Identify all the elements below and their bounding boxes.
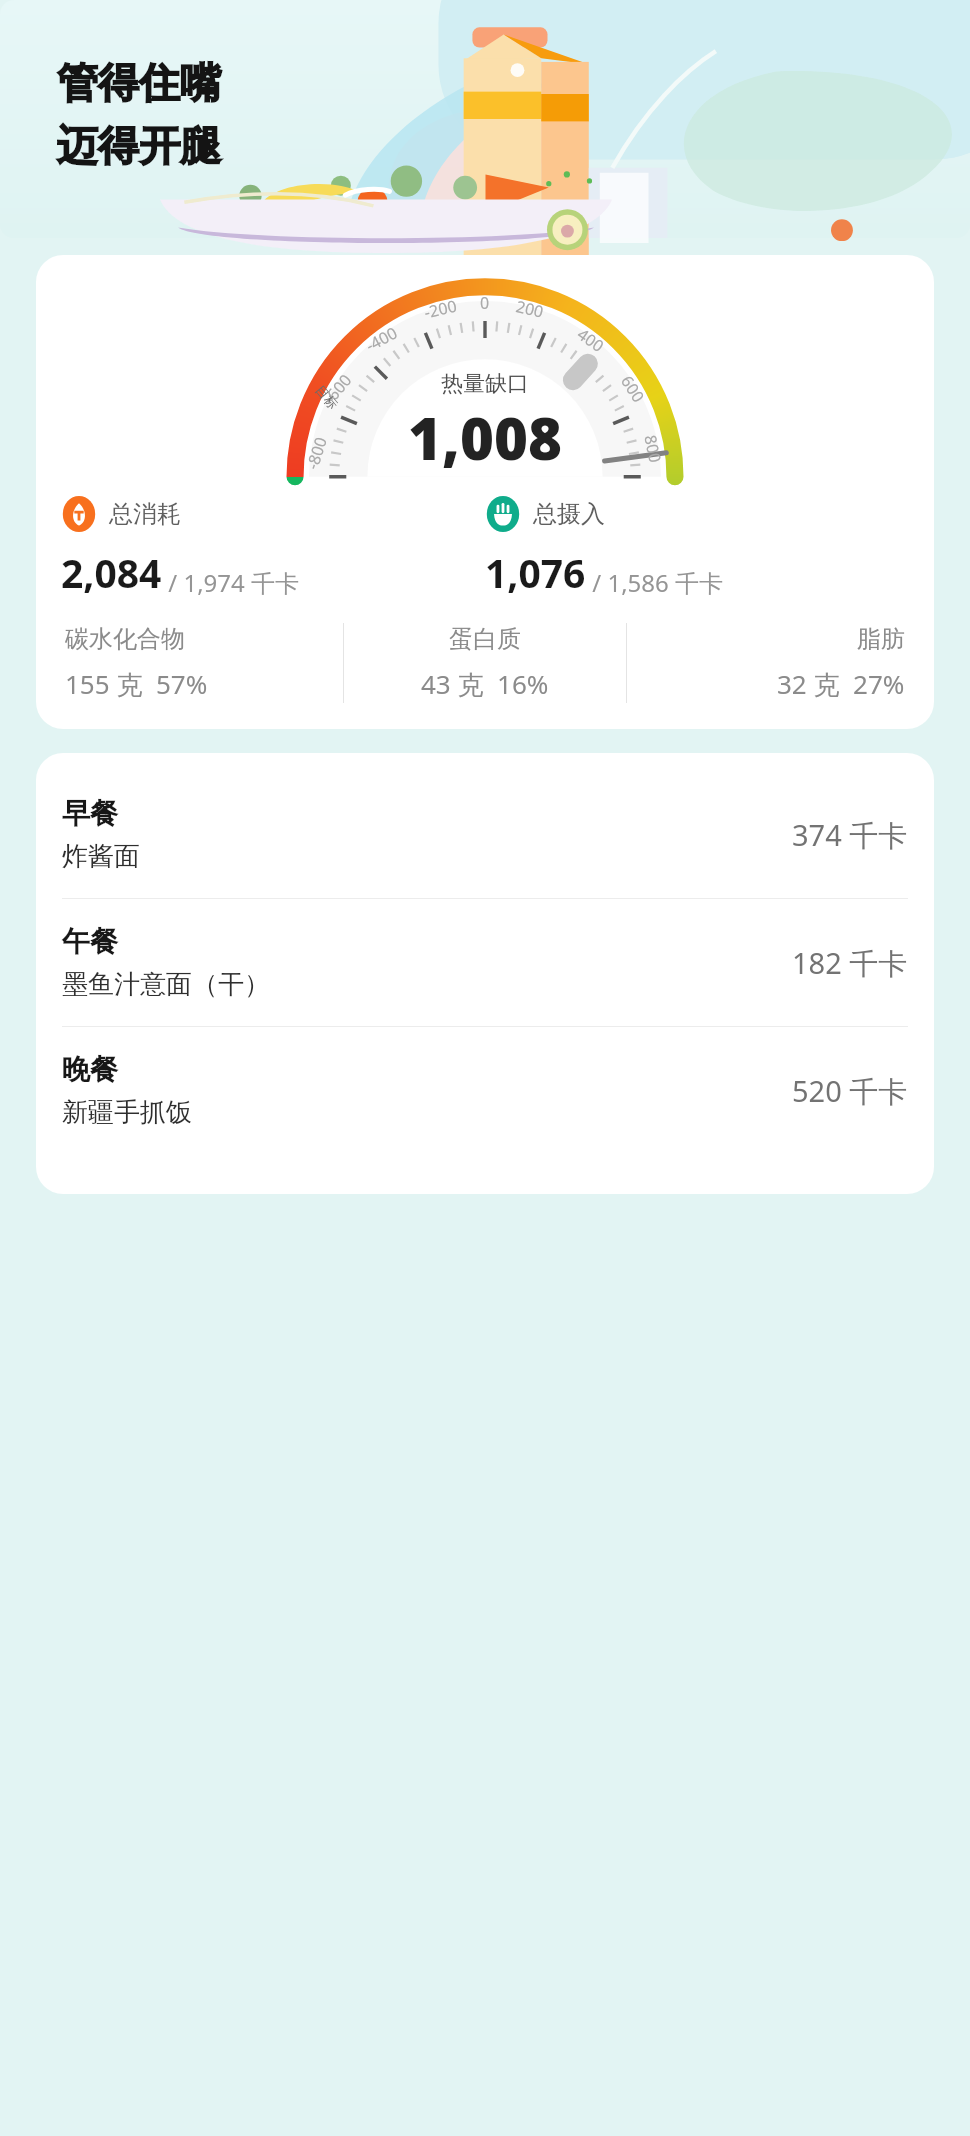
staticText: 200: [514, 295, 546, 323]
staticText: -600: [318, 369, 357, 409]
staticText: 182 千卡: [792, 943, 908, 983]
staticText: 新疆手抓饭: [62, 1096, 192, 1129]
staticText: 炸酱面: [62, 840, 140, 873]
button[interactable]: 晚餐: [62, 1027, 908, 1154]
staticText: 520 千卡: [792, 1071, 908, 1111]
staticText: 2,084: [61, 546, 162, 599]
staticText: 迈得开腿: [57, 121, 221, 173]
staticText: 管得住嘴: [57, 58, 221, 110]
staticText: 400: [573, 323, 609, 357]
staticText: 374 千卡: [792, 815, 908, 855]
staticText: 1,076: [485, 546, 586, 599]
staticText: 午餐: [62, 924, 118, 959]
staticText: 碳水化合物: [65, 624, 185, 654]
staticText: 43 克 16%: [421, 666, 549, 702]
staticText: 蛋白质: [449, 624, 521, 654]
staticText: 0: [480, 292, 490, 314]
staticText: 早餐: [62, 796, 118, 831]
other: Total intake: [485, 496, 521, 532]
staticText: 800: [639, 433, 667, 465]
staticText: 总摄入: [533, 499, 605, 529]
staticText: 1,008: [408, 398, 562, 477]
button[interactable]: 早餐: [62, 771, 908, 898]
button[interactable]: 午餐: [62, 899, 908, 1026]
staticText: -800: [301, 434, 332, 472]
staticText: 32 克 27%: [777, 666, 905, 702]
staticText: / 1,974 千卡: [162, 566, 299, 599]
staticText: 总消耗: [109, 499, 181, 529]
staticText: / 1,586 千卡: [586, 566, 723, 599]
button[interactable]: -800: [36, 255, 934, 729]
staticText: 晚餐: [62, 1052, 118, 1087]
staticText: -400: [362, 321, 401, 356]
staticText: -200: [422, 295, 459, 323]
staticText: 脂肪: [857, 624, 905, 654]
staticText: 600: [616, 371, 650, 407]
staticText: 热量缺口: [441, 370, 529, 398]
staticText: 墨鱼汁意面（干）: [62, 968, 270, 1001]
staticText: 目标: [312, 382, 341, 412]
staticText: 155 克 57%: [65, 666, 208, 702]
other: Total burned: [61, 496, 97, 532]
